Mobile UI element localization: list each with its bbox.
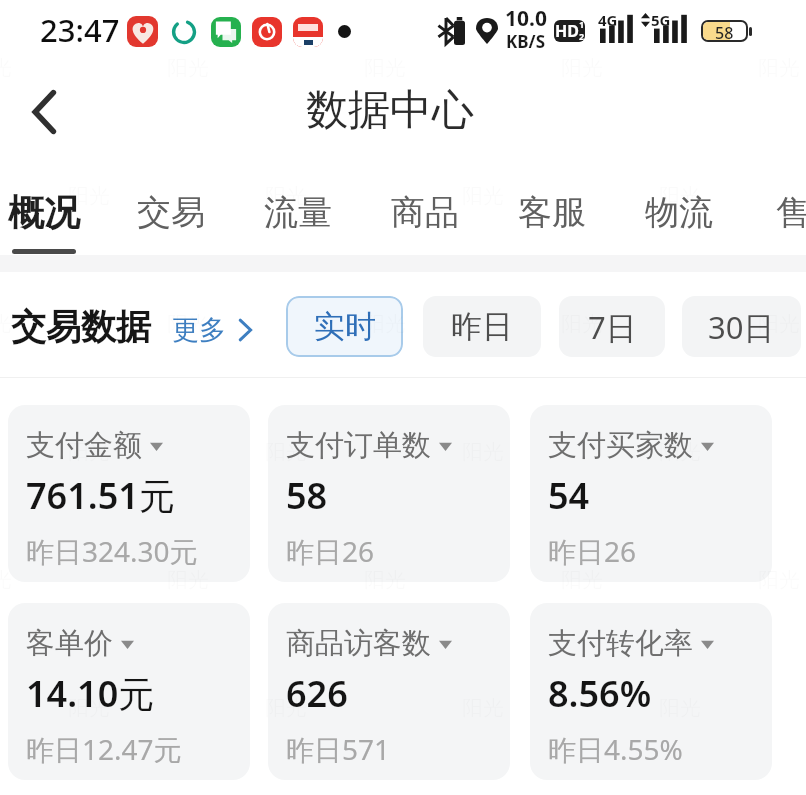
staticText: 阳光 <box>68 439 110 465</box>
staticText: KB/S <box>506 30 546 53</box>
staticText: 10.0 <box>505 4 547 33</box>
button[interactable]: 实时 <box>286 296 403 357</box>
button[interactable]: 流量 <box>242 162 354 255</box>
staticText: 更多 <box>172 313 226 347</box>
staticText: 昨日324.30元 <box>26 532 198 570</box>
staticText: 昨日26 <box>548 532 637 570</box>
staticText: 7日 <box>588 306 637 348</box>
button[interactable]: 商品访客数 <box>268 603 510 780</box>
staticText: 实时 <box>314 307 376 346</box>
staticText: 1 <box>579 20 585 30</box>
button[interactable]: 30日 <box>682 296 801 357</box>
staticText: HD <box>555 20 579 42</box>
staticText: 物流 <box>645 191 713 234</box>
button[interactable]: 更多 <box>172 310 253 344</box>
staticText: 客单价 <box>26 625 113 662</box>
staticText: 阳光 <box>364 311 406 337</box>
staticText: 阳光 <box>561 311 603 337</box>
staticText: 支付订单数 <box>286 427 431 464</box>
staticText: 阳光 <box>167 567 209 593</box>
staticText: 58 <box>715 22 734 40</box>
staticText: 数据中心 <box>306 84 474 137</box>
staticText: 阳光 <box>758 567 800 593</box>
staticText: 交易数据 <box>11 305 151 349</box>
staticText: 流量 <box>264 191 332 234</box>
staticText: 54 <box>548 471 590 520</box>
staticText: 626 <box>286 669 348 718</box>
staticText: 阳光 <box>0 311 12 337</box>
button[interactable]: 客单价 <box>8 603 250 780</box>
button[interactable]: 支付订单数 <box>268 405 510 582</box>
button[interactable]: 客服 <box>496 162 608 255</box>
staticText: 客服 <box>518 191 586 234</box>
staticText: 阳光 <box>364 567 406 593</box>
staticText: 阳光 <box>265 439 307 465</box>
button[interactable]: 支付转化率 <box>530 603 772 780</box>
staticText: 概况 <box>8 190 80 235</box>
staticText: 阳光 <box>265 695 307 721</box>
button[interactable]: 昨日 <box>423 296 541 357</box>
staticText: 支付买家数 <box>548 427 693 464</box>
staticText: 14.10元 <box>26 669 155 718</box>
staticText: 支付转化率 <box>548 625 693 662</box>
button[interactable]: 物流 <box>623 162 735 255</box>
staticText: 商品 <box>391 191 459 234</box>
button[interactable]: 商品 <box>369 162 481 255</box>
staticText: 阳光 <box>758 311 800 337</box>
staticText: 阳光 <box>68 183 110 209</box>
staticText: 阳光 <box>68 695 110 721</box>
staticText: 阳光 <box>561 567 603 593</box>
staticText: 交易 <box>137 191 205 234</box>
staticText: 阳光 <box>167 311 209 337</box>
staticText: 昨日 <box>451 307 513 346</box>
staticText: 阳光 <box>265 183 307 209</box>
staticText: 昨日571 <box>286 730 391 768</box>
staticText: 58 <box>286 471 328 520</box>
button[interactable]: 7日 <box>559 296 665 357</box>
staticText: 23:47 <box>40 9 120 51</box>
button[interactable]: 支付金额 <box>8 405 250 582</box>
staticText: 昨日4.55% <box>548 730 683 768</box>
staticText: 商品访客数 <box>286 625 431 662</box>
staticText: 售后 <box>776 191 806 234</box>
staticText: 2 <box>579 30 585 40</box>
staticText: 8.56% <box>548 669 652 718</box>
staticText: 支付金额 <box>26 427 142 464</box>
button[interactable]: 支付买家数 <box>530 405 772 582</box>
staticText: 4G <box>598 10 618 30</box>
staticText: 昨日12.47元 <box>26 730 182 768</box>
staticText: 30日 <box>708 306 775 348</box>
button[interactable]: Back <box>10 78 78 146</box>
staticText: 阳光 <box>659 439 701 465</box>
button[interactable]: 概况 <box>0 162 100 255</box>
staticText: 昨日26 <box>286 532 375 570</box>
button[interactable]: 售后 <box>754 162 806 255</box>
staticText: 阳光 <box>659 183 701 209</box>
staticText: 761.51元 <box>26 471 175 520</box>
staticText: 5G <box>651 10 671 30</box>
button[interactable]: 交易 <box>115 162 227 255</box>
